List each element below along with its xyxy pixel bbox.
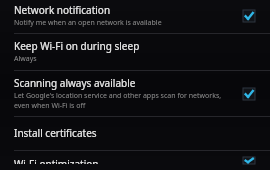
button[interactable]: Install certificates [0, 117, 270, 150]
staticText: Keep Wi-Fi on during sleep [14, 39, 140, 53]
button[interactable]: Toggle Wi-Fi optimization [238, 157, 260, 164]
button[interactable]: Toggle Scanning always available [238, 83, 260, 105]
button[interactable]: Keep Wi-Fi on during sleep [0, 34, 270, 70]
staticText: Always [14, 54, 37, 64]
staticText: Install certificates [14, 126, 97, 140]
button[interactable]: Wi-Fi optimization [0, 151, 270, 170]
staticText: Notify me when an open network is availa… [14, 18, 162, 28]
staticText: Wi-Fi optimization [14, 157, 99, 164]
button[interactable]: Scanning always available [0, 71, 270, 116]
button[interactable]: Toggle Network notification [238, 5, 260, 27]
staticText: Network notification [14, 3, 111, 17]
staticText: Scanning always available [14, 76, 136, 90]
staticText: Let Google's location service and other … [14, 91, 230, 111]
button[interactable]: Network notification [0, 0, 270, 33]
